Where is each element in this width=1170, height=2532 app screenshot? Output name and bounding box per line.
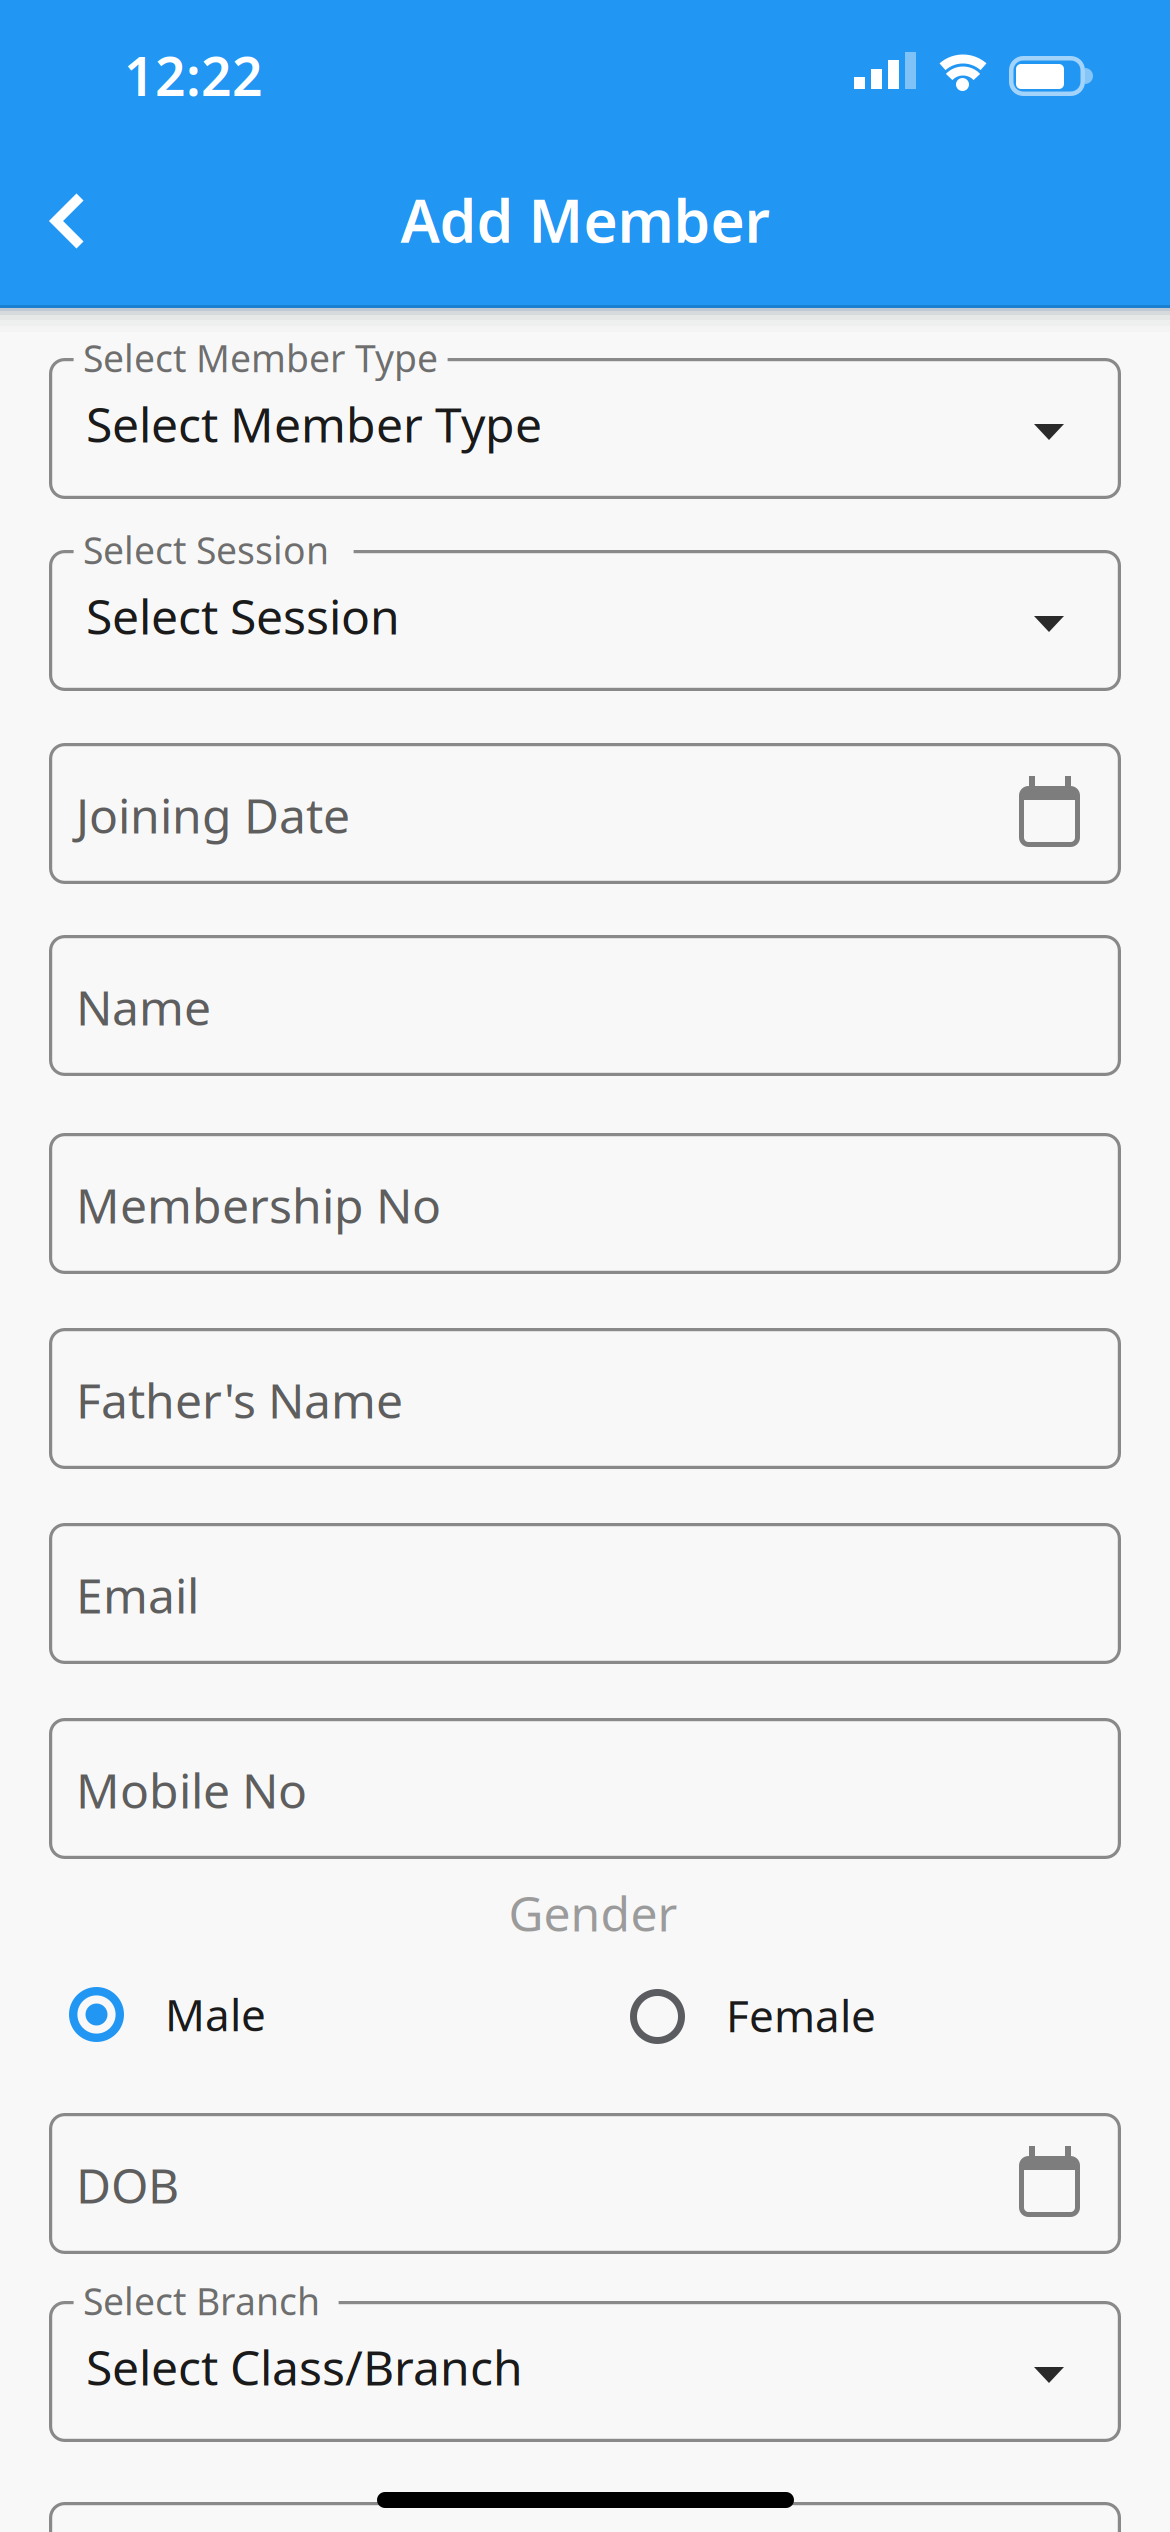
staticText: Joining Date: [76, 783, 350, 847]
button[interactable]: Select Session: [49, 550, 1121, 691]
staticText: Gender: [508, 1881, 677, 1945]
staticText: Membership No: [76, 1173, 441, 1237]
staticText: Female: [726, 1986, 876, 2044]
staticText: Mobile No: [76, 1758, 307, 1822]
button[interactable]: Membership No: [49, 1133, 1121, 1274]
staticText: Select Branch: [83, 2276, 320, 2326]
staticText: Name: [76, 975, 211, 1039]
staticText: Select Session: [86, 584, 400, 648]
staticText: Add Member: [400, 181, 769, 259]
staticText: Select Session: [83, 525, 329, 575]
button[interactable]: Male: [28, 1966, 498, 2062]
staticText: Select Member Type: [83, 333, 438, 383]
button[interactable]: Select Branch: [49, 2301, 1121, 2442]
staticText: Select Class/Branch: [86, 2335, 523, 2399]
button[interactable]: Mobile No: [49, 1718, 1121, 1859]
button[interactable]: Father's Name: [49, 1328, 1121, 1469]
button[interactable]: Female: [628, 1966, 1098, 2062]
button[interactable]: Back: [0, 162, 138, 282]
staticText: Male: [165, 1985, 266, 2043]
staticText: 12:22: [124, 40, 263, 111]
button[interactable]: Name: [49, 935, 1121, 1076]
button[interactable]: DOB: [49, 2113, 1121, 2254]
staticText: DOB: [76, 2153, 179, 2217]
button[interactable]: Joining Date: [49, 743, 1121, 884]
staticText: Father's Name: [76, 1368, 403, 1432]
button[interactable]: Select Member Type: [49, 358, 1121, 499]
staticText: Select Member Type: [86, 392, 542, 456]
button[interactable]: Email: [49, 1523, 1121, 1664]
staticText: Email: [76, 1563, 199, 1627]
